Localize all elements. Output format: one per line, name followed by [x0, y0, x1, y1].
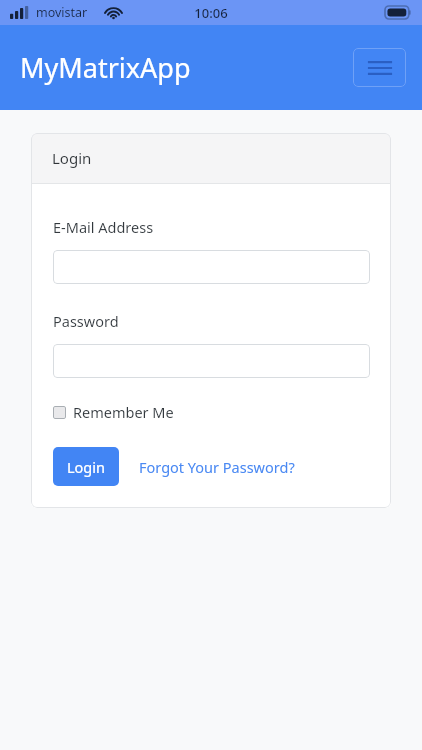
staticText: movistar [36, 4, 88, 21]
staticText: Remember Me [73, 402, 174, 422]
staticText: 10:06 [194, 4, 228, 22]
button[interactable]: Open navigation menu [353, 48, 406, 87]
button[interactable]: MyMatrixApp [20, 49, 191, 86]
button[interactable] [53, 250, 370, 284]
staticText: Login [67, 457, 105, 477]
button[interactable]: Login [53, 447, 119, 486]
button[interactable] [53, 344, 370, 378]
button[interactable]: Forgot Your Password? [139, 457, 295, 477]
staticText: Forgot Your Password? [139, 457, 295, 477]
staticText: Password [53, 311, 119, 331]
staticText: Login [52, 148, 92, 168]
staticText: E-Mail Address [53, 217, 154, 237]
button[interactable]: Remember Me [53, 402, 174, 422]
